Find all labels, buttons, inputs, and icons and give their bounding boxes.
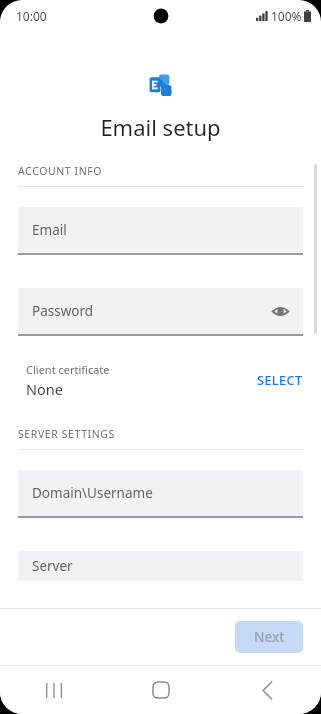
staticText: 100% [271, 8, 302, 24]
staticText: Client certificate [26, 362, 110, 377]
button[interactable]: Back [214, 666, 321, 714]
button[interactable]: Home [107, 666, 214, 714]
staticText: Email setup [100, 112, 221, 142]
button[interactable]: Server [18, 551, 303, 581]
staticText: Email [32, 221, 67, 239]
staticText: ACCOUNT INFO [18, 164, 103, 178]
staticText: Next [254, 628, 285, 646]
staticText: Password [32, 302, 94, 320]
button[interactable]: SELECT [253, 366, 307, 395]
staticText: SELECT [257, 372, 303, 389]
staticText: 10:00 [16, 8, 47, 24]
button[interactable]: Email [18, 207, 303, 255]
button[interactable]: Client certificate [26, 362, 307, 399]
staticText: Server [32, 557, 73, 575]
staticText: SERVER SETTINGS [18, 427, 115, 441]
button[interactable]: Next [235, 621, 303, 653]
button[interactable]: Recent apps [0, 666, 107, 714]
button[interactable]: Show password [267, 298, 293, 324]
button[interactable]: Password [18, 288, 303, 336]
staticText: Domain\Username [32, 484, 153, 502]
staticText: None [26, 379, 63, 399]
button[interactable]: Domain\Username [18, 470, 303, 518]
